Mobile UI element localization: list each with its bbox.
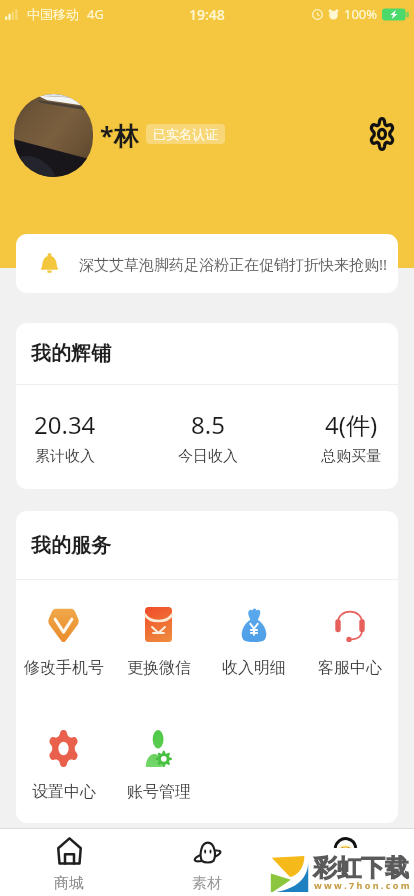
staticText: 我的 (330, 874, 360, 893)
button[interactable]: 更换微信 (111, 606, 206, 678)
staticText: 我的服务 (31, 533, 111, 558)
staticText: 今日收入 (178, 447, 238, 466)
staticText: w w w . 7 h o n . c o m (314, 879, 410, 891)
button[interactable]: 深艾艾草泡脚药足浴粉正在促销打折快来抢购!! (16, 234, 398, 293)
button[interactable]: Settings (364, 116, 400, 152)
button[interactable]: 商城 (0, 837, 138, 896)
button[interactable]: 收入明细 (206, 606, 302, 678)
button[interactable]: 修改手机号 (16, 606, 111, 678)
button[interactable]: 账号管理 (111, 730, 206, 802)
staticText: 4G (87, 5, 104, 23)
staticText: 100% (344, 5, 378, 23)
staticText: 客服中心 (318, 658, 382, 678)
staticText: 设置中心 (32, 782, 96, 802)
button[interactable]: 已实名认证 (153, 124, 218, 144)
staticText: 彩虹下载 (313, 853, 409, 883)
staticText: 商城 (54, 874, 84, 893)
staticText: 深艾艾草泡脚药足浴粉正在促销打折快来抢购!! (79, 254, 388, 274)
button[interactable]: 我的 (276, 837, 414, 896)
staticText: *林 (100, 118, 139, 150)
staticText: 中国移动 (27, 6, 79, 22)
staticText: 收入明细 (222, 658, 286, 678)
button[interactable]: 素材 (138, 837, 276, 896)
staticText: 素材 (192, 874, 222, 893)
button[interactable]: 20.34 (16, 385, 120, 489)
button[interactable]: 4(件) (296, 385, 398, 489)
staticText: 8.5 (191, 408, 225, 441)
button[interactable]: 设置中心 (16, 730, 111, 802)
button[interactable]: 客服中心 (302, 606, 398, 678)
staticText: 账号管理 (127, 782, 191, 802)
staticText: 修改手机号 (24, 658, 104, 678)
staticText: 总购买量 (321, 447, 381, 466)
staticText: 4(件) (325, 408, 378, 441)
staticText: 19:48 (189, 5, 225, 24)
staticText: 我的辉铺 (31, 341, 111, 366)
button[interactable] (14, 94, 93, 177)
staticText: 累计收入 (35, 447, 95, 466)
button[interactable]: 8.5 (153, 385, 263, 489)
staticText: 已实名认证 (153, 126, 218, 142)
staticText: 20.34 (34, 408, 96, 441)
staticText: 更换微信 (127, 658, 191, 678)
